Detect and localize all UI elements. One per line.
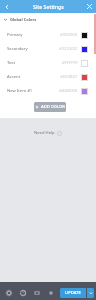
button[interactable]: Text [0, 56, 96, 70]
button[interactable]: Global Colors [0, 13, 96, 25]
button[interactable]: ADD COLOR [34, 102, 66, 112]
button[interactable]: Responsive mode [30, 286, 44, 300]
button[interactable]: Back [0, 0, 13, 13]
button[interactable]: History [16, 286, 30, 300]
button[interactable]: More update options [87, 288, 94, 298]
button[interactable]: Primary [0, 28, 96, 42]
button[interactable]: Preview [44, 286, 58, 300]
staticText: #2222DD [59, 46, 78, 52]
staticText: Need Help [34, 130, 55, 136]
staticText: #000000 [60, 32, 78, 38]
staticText: Site Settings [33, 3, 64, 10]
staticText: New Item #1 [7, 88, 33, 94]
button[interactable]: Settings [2, 286, 16, 300]
staticText: ADD COLOR [41, 104, 65, 110]
staticText: #FFFFFF [62, 60, 78, 66]
staticText: Global Colors [10, 17, 37, 22]
staticText: #E03B47 [60, 74, 78, 80]
staticText: UPDATE [65, 290, 81, 296]
button[interactable]: New Item #1 [0, 84, 96, 98]
staticText: Accent [7, 74, 21, 80]
button[interactable]: Accent [0, 70, 96, 84]
button[interactable]: Secondary [0, 42, 96, 56]
staticText: Primary [7, 32, 23, 38]
staticText: Text [7, 60, 16, 66]
staticText: #A86EDB [59, 88, 78, 94]
button[interactable]: Need Help [34, 130, 62, 136]
button[interactable]: Close [83, 0, 96, 13]
staticText: Secondary [7, 46, 28, 52]
button[interactable]: UPDATE [60, 288, 86, 298]
